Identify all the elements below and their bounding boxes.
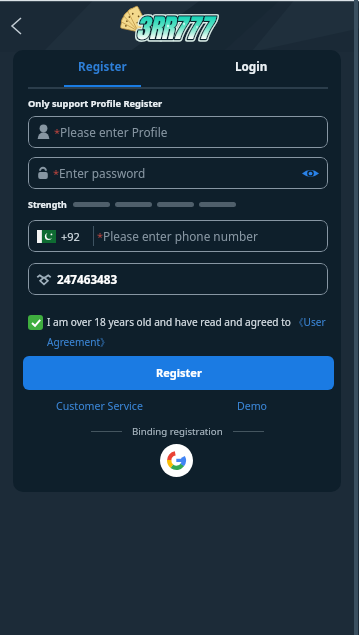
- button[interactable]: Login: [177, 50, 326, 87]
- staticText: Binding registration: [132, 425, 223, 438]
- staticText: I am over 18 years old and have read and…: [47, 315, 334, 349]
- staticText: *Please enter phone number: [97, 228, 258, 244]
- button[interactable]: *Please enter Profile: [28, 116, 328, 148]
- button[interactable]: Demo: [237, 399, 268, 413]
- button[interactable]: *Enter password: [28, 157, 328, 189]
- button[interactable]: +92: [28, 220, 328, 252]
- staticText: Register: [78, 58, 127, 74]
- button[interactable]: Customer Service: [56, 399, 143, 413]
- staticText: Strength: [28, 198, 67, 210]
- staticText: Customer Service: [56, 399, 143, 413]
- button[interactable]: Register: [28, 50, 177, 87]
- button[interactable]: I am over 18 checkbox: [28, 315, 43, 330]
- button[interactable]: Back: [2, 12, 30, 40]
- button[interactable]: Continue with Google: [160, 444, 193, 477]
- staticText: *Enter password: [53, 165, 146, 181]
- button[interactable]: Register: [23, 356, 334, 390]
- staticText: Only support Profile Register: [28, 97, 163, 110]
- staticText: *Please enter Profile: [54, 124, 168, 140]
- staticText: Register: [156, 365, 202, 380]
- staticText: 247463483: [57, 271, 118, 287]
- button[interactable]: 247463483: [28, 263, 328, 295]
- button[interactable]: Show password: [300, 163, 320, 183]
- staticText: Login: [235, 58, 268, 74]
- staticText: +92: [61, 229, 80, 244]
- staticText: Demo: [237, 399, 268, 413]
